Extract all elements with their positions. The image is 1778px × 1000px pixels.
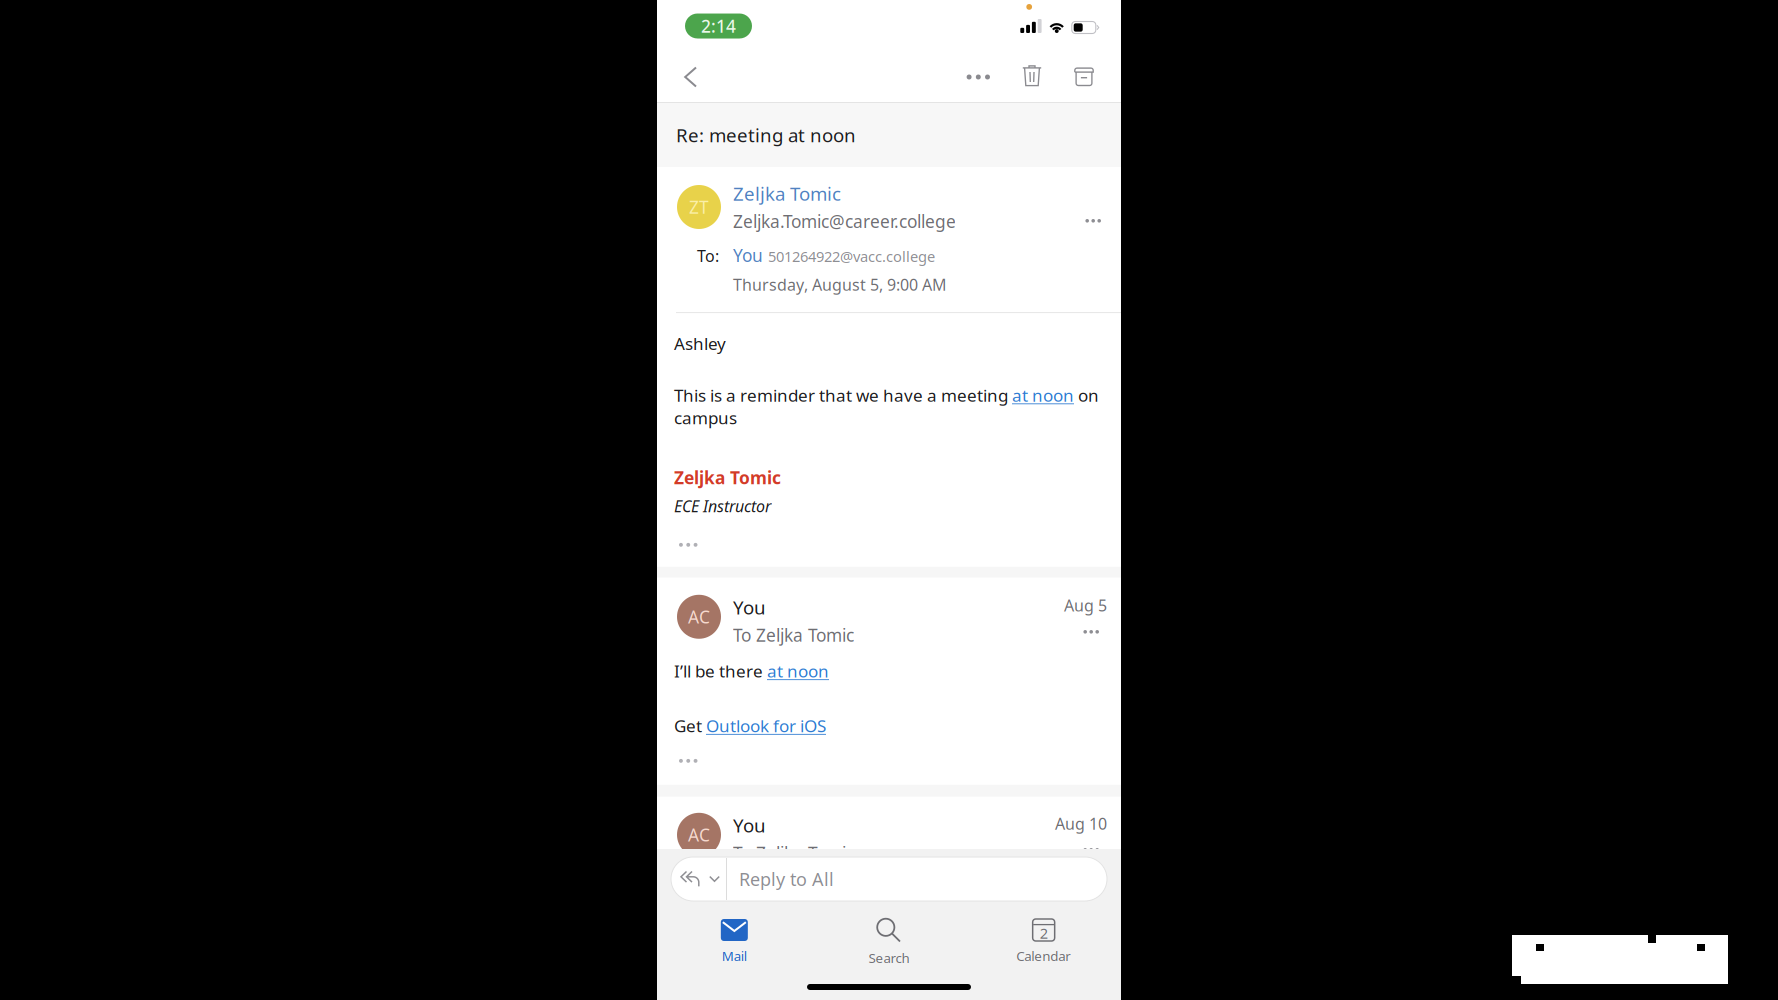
button[interactable]: Archive <box>1059 54 1121 99</box>
staticText: Zeljka Tomic <box>733 181 841 206</box>
button[interactable]: Reply to All <box>671 857 1107 901</box>
button[interactable]: Show message details <box>674 534 711 556</box>
staticText: 501264922@vacc.college <box>768 247 935 266</box>
staticText: AC <box>688 823 710 846</box>
staticText: You <box>733 813 766 838</box>
staticText: Search <box>868 949 909 967</box>
staticText: To Zeljka Tomic <box>733 624 854 647</box>
staticText: Ashley <box>674 332 726 355</box>
staticText: To Zeljka Tomic <box>733 842 854 865</box>
staticText: Re: meeting at noon <box>676 123 856 147</box>
button[interactable]: Back <box>657 53 715 100</box>
staticText: Aug 10 <box>1055 813 1107 834</box>
staticText: Zeljka.Tomic@career.college <box>733 210 956 233</box>
staticText: Zeljka Tomic <box>674 466 781 489</box>
button[interactable]: Message actions <box>1075 624 1107 640</box>
button[interactable]: More options <box>952 56 1005 97</box>
button[interactable]: Mail <box>657 919 812 965</box>
button[interactable]: Show message details <box>674 750 711 772</box>
staticText: 2 <box>1040 923 1048 943</box>
button[interactable]: Delete <box>1005 53 1059 101</box>
staticText: To: <box>697 245 719 266</box>
staticText: ZT <box>689 195 709 218</box>
button[interactable]: Search <box>812 917 966 967</box>
staticText: Aug 5 <box>1064 595 1107 616</box>
staticText: You <box>733 595 766 620</box>
button[interactable]: Message actions <box>1075 209 1111 233</box>
staticText: Thursday, August 5, 9:00 AM <box>733 274 947 295</box>
staticText: 2:14 <box>701 14 736 37</box>
staticText: You <box>733 244 763 267</box>
staticText: This is a reminder that we have a meetin… <box>674 384 1099 429</box>
staticText: ECE Instructor <box>674 495 771 517</box>
staticText: Reply to All <box>739 867 834 891</box>
staticText: Get Outlook for iOS <box>674 714 826 737</box>
staticText: Mail <box>722 947 747 965</box>
staticText: I’ll be there at noon <box>674 660 829 682</box>
staticText: AC <box>688 605 710 628</box>
staticText: Calendar <box>1016 947 1071 965</box>
button[interactable]: 2 <box>966 919 1121 965</box>
